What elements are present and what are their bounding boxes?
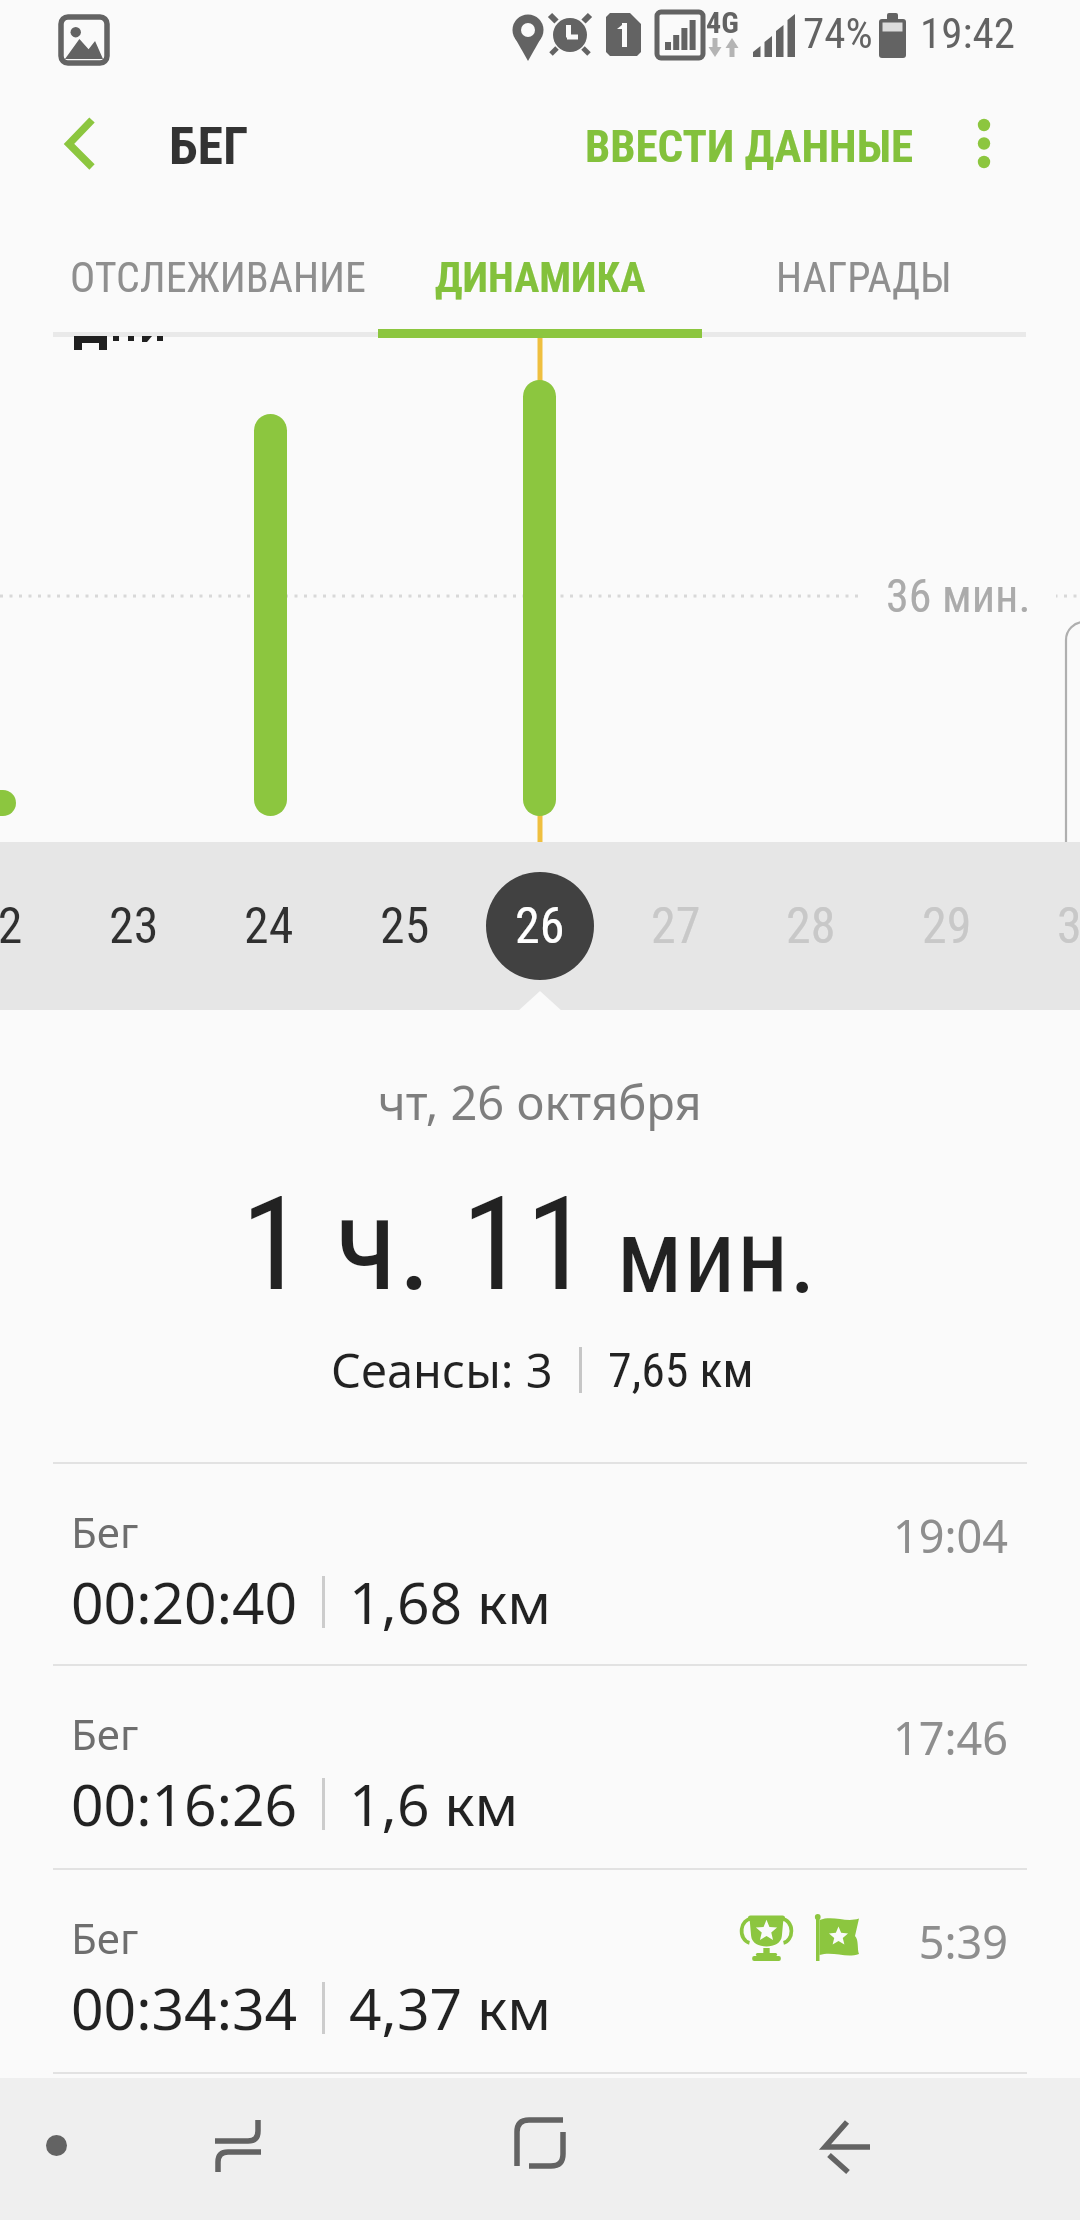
staticText: 4,37 км — [349, 1969, 551, 2047]
staticText: 00:34:34 — [71, 1969, 298, 2047]
button[interactable]: Back — [803, 2101, 893, 2191]
button[interactable]: 24 — [202, 842, 336, 1010]
staticText: 22 — [0, 897, 23, 956]
staticText: чт, 26 октября — [378, 1070, 702, 1134]
button[interactable]: Бег — [0, 1868, 1080, 2071]
button[interactable]: НАГРАДЫ — [708, 223, 1020, 332]
button[interactable]: Бег — [0, 1664, 1080, 1867]
button[interactable]: ВВЕСТИ ДАННЫЕ — [585, 120, 913, 173]
staticText: 7,65 км — [608, 1342, 754, 1398]
staticText: 25 — [380, 897, 430, 956]
button[interactable]: 27 — [609, 842, 743, 1010]
staticText: Сеансы: 3 — [331, 1338, 553, 1402]
staticText: 5:39 — [0, 1911, 1008, 1972]
staticText: 28 — [786, 897, 836, 956]
staticText: 4G — [706, 5, 739, 40]
button[interactable]: 26 — [473, 842, 607, 1010]
staticText: 1,68 км — [349, 1563, 551, 1641]
staticText: 19:04 — [0, 1505, 1008, 1566]
staticText: 24 — [244, 897, 294, 956]
staticText: мин. — [616, 1196, 817, 1318]
staticText: 29 — [922, 897, 972, 956]
button[interactable]: More options — [950, 112, 1026, 188]
staticText: 17:46 — [0, 1707, 1008, 1768]
button[interactable]: 30 — [1015, 842, 1080, 1010]
staticText: 1,6 км — [349, 1765, 519, 1843]
button[interactable]: Notification — [28, 2117, 84, 2173]
button[interactable]: 29 — [880, 842, 1014, 1010]
button[interactable]: ОТСЛЕЖИВАНИЕ — [52, 223, 384, 332]
staticText: ОТСЛЕЖИВАНИЕ — [70, 253, 366, 302]
button[interactable]: Бег — [0, 1462, 1080, 1665]
button[interactable]: 22 — [0, 842, 65, 1010]
staticText: БЕГ — [169, 116, 249, 177]
button[interactable]: 25 — [338, 842, 472, 1010]
staticText: 74% — [803, 8, 873, 58]
staticText: 00:20:40 — [71, 1563, 298, 1641]
staticText: 1 ч. 11 — [241, 1168, 590, 1320]
staticText: 36 мин. — [886, 569, 1031, 621]
staticText: Бег — [71, 1503, 139, 1560]
staticText: ВВЕСТИ ДАННЫЕ — [585, 120, 913, 173]
staticText: Бег — [71, 1705, 139, 1762]
staticText: 26 — [515, 897, 565, 956]
button[interactable]: ДИНАМИКА — [384, 223, 696, 332]
staticText: 27 — [651, 897, 701, 956]
button[interactable]: 23 — [67, 842, 201, 1010]
staticText: 00:16:26 — [71, 1765, 298, 1843]
button[interactable]: Recent apps — [193, 2101, 283, 2191]
staticText: 23 — [109, 897, 159, 956]
button[interactable]: 28 — [744, 842, 878, 1010]
staticText: НАГРАДЫ — [776, 253, 952, 302]
staticText: ДИНАМИКА — [435, 253, 646, 302]
button[interactable]: Back — [48, 108, 124, 184]
staticText: 30 — [1057, 897, 1080, 956]
staticText: Бег — [71, 1909, 139, 1966]
button[interactable]: Home — [495, 2098, 585, 2188]
staticText: 19:42 — [920, 8, 1015, 58]
